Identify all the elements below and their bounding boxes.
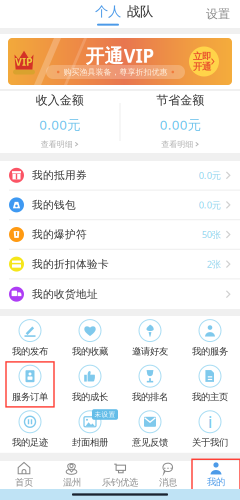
staticText: 开通 [193, 61, 211, 72]
staticText: 查看明细 [161, 139, 193, 149]
button[interactable]: 我的发布 [0, 316, 60, 362]
staticText: 未设置 [94, 410, 115, 419]
staticText: 开通VIP [85, 43, 154, 68]
button[interactable]: 消息 [144, 459, 192, 491]
staticText: 战队 [127, 3, 153, 20]
staticText: 关于我们 [192, 437, 228, 448]
button[interactable]: 开通VIP [0, 38, 240, 85]
staticText: 服务订单 [12, 391, 48, 403]
staticText: 我的折扣体验卡 [32, 257, 109, 271]
button[interactable]: 节省金额 [120, 87, 240, 157]
staticText: i [208, 411, 212, 432]
staticText: 首页 [15, 477, 33, 488]
staticText: 设置 [206, 7, 230, 21]
button[interactable]: 我的折扣体验卡 [0, 250, 240, 279]
button[interactable]: 个人 [93, 0, 123, 30]
button[interactable]: 我的排名 [120, 362, 180, 407]
button[interactable]: 我的爆护符 [0, 220, 240, 250]
staticText: 邀请好友 [132, 346, 168, 357]
button[interactable]: 首页 [0, 459, 48, 491]
button[interactable]: 服务订单 [0, 362, 60, 407]
staticText: 购买渔具装备，尊享折扣优惠 [63, 67, 167, 77]
button[interactable]: 我的收货地址 [0, 279, 240, 309]
staticText: 我的爆护符 [32, 228, 87, 241]
button[interactable]: 我的主页 [180, 362, 240, 407]
staticText: 我的排名 [132, 391, 168, 403]
staticText: 消息 [159, 477, 177, 488]
staticText: 我的主页 [192, 391, 228, 403]
staticText: 0.00元 [39, 116, 80, 133]
staticText: 节省金额 [156, 93, 204, 108]
staticText: 我的抵用券 [32, 169, 87, 182]
button[interactable]: 意见反馈 [120, 407, 180, 453]
staticText: 个人 [95, 3, 121, 20]
staticText: 0.0元 [199, 169, 221, 181]
staticText: 我的收货地址 [32, 288, 98, 301]
staticText: 温州 [63, 477, 81, 488]
button[interactable]: 我的钱包 [0, 191, 240, 220]
staticText: 收入金额 [36, 93, 84, 108]
staticText: 封面相册 [72, 437, 108, 448]
button[interactable]: 收入金额 [0, 87, 119, 157]
button[interactable]: 封面相册 [60, 407, 120, 453]
button[interactable]: 我的 [192, 459, 240, 491]
staticText: 我的成长 [72, 391, 108, 403]
staticText: 意见反馈 [132, 437, 168, 448]
staticText: VIP [15, 54, 33, 69]
button[interactable]: 我的收藏 [60, 316, 120, 362]
button[interactable]: 战队 [125, 0, 155, 30]
staticText: 0.00元 [160, 116, 201, 133]
button[interactable]: 温州 [48, 459, 96, 491]
staticText: 2张 [207, 258, 221, 270]
button[interactable]: 我的成长 [60, 362, 120, 407]
staticText: 查看明细 [41, 139, 73, 149]
button[interactable]: 设置 [206, 1, 240, 27]
button[interactable]: 我的足迹 [0, 407, 60, 453]
button[interactable]: 邀请好友 [120, 316, 180, 362]
staticText: 我的足迹 [12, 437, 48, 448]
staticText: 立即 [193, 50, 211, 62]
button[interactable]: i [180, 407, 240, 453]
staticText: 我的 [207, 476, 225, 488]
button[interactable]: 我的服务 [180, 316, 240, 362]
staticText: 我的发布 [12, 346, 48, 357]
staticText: 我的钱包 [32, 198, 76, 211]
staticText: 我的服务 [192, 346, 228, 357]
staticText: 50张 [202, 228, 221, 241]
button[interactable]: 乐钓优选 [96, 459, 144, 491]
staticText: 0.0元 [199, 199, 221, 211]
staticText: 我的收藏 [72, 346, 108, 357]
staticText: 乐钓优选 [102, 477, 138, 488]
button[interactable]: 我的抵用券 [0, 161, 240, 191]
